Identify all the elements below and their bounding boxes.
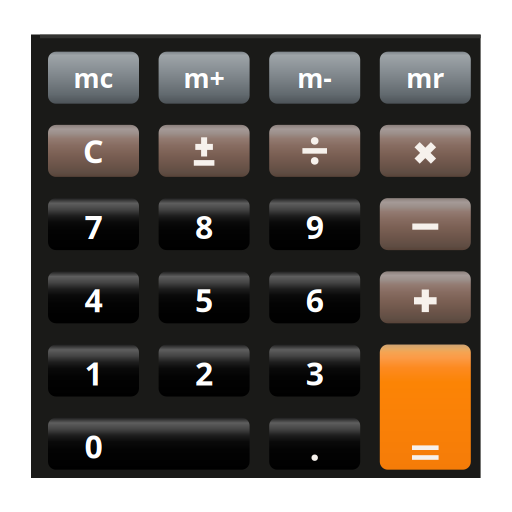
staticText: 0 xyxy=(84,425,102,467)
button[interactable]: 2 xyxy=(159,344,250,396)
staticText: m- xyxy=(297,60,332,95)
button[interactable]: Equals xyxy=(380,344,471,470)
button[interactable]: 7 xyxy=(48,198,139,250)
staticText: 2 xyxy=(195,352,213,394)
button[interactable]: m- xyxy=(269,52,360,104)
staticText: mc xyxy=(73,60,113,95)
button[interactable]: 9 xyxy=(269,198,360,250)
button[interactable]: 5 xyxy=(159,271,250,323)
button[interactable]: Divide xyxy=(269,125,360,177)
button[interactable]: C xyxy=(48,125,139,177)
button[interactable]: 1 xyxy=(48,344,139,396)
button[interactable]: Decimal point xyxy=(269,418,360,470)
staticText: 7 xyxy=(84,205,102,248)
staticText: C xyxy=(83,130,104,172)
button[interactable]: Plus minus xyxy=(159,125,250,177)
staticText: 8 xyxy=(195,205,213,248)
button[interactable]: mr xyxy=(380,52,471,104)
button[interactable]: 6 xyxy=(269,271,360,323)
button[interactable]: Minus xyxy=(380,198,471,250)
staticText: m+ xyxy=(184,60,225,95)
button[interactable]: 8 xyxy=(159,198,250,250)
button[interactable]: m+ xyxy=(159,52,250,104)
button[interactable]: 4 xyxy=(48,271,139,323)
staticText: 1 xyxy=(84,352,102,394)
staticText: 9 xyxy=(306,205,324,248)
staticText: 4 xyxy=(84,279,102,321)
staticText: mr xyxy=(406,60,444,95)
button[interactable]: Multiply xyxy=(380,125,471,177)
staticText: 3 xyxy=(306,352,324,394)
button[interactable]: Plus xyxy=(380,271,471,323)
staticText: 5 xyxy=(195,279,213,321)
staticText: 6 xyxy=(306,279,324,321)
button[interactable]: 3 xyxy=(269,344,360,396)
button[interactable]: mc xyxy=(48,52,139,104)
button[interactable]: 0 xyxy=(48,418,250,470)
